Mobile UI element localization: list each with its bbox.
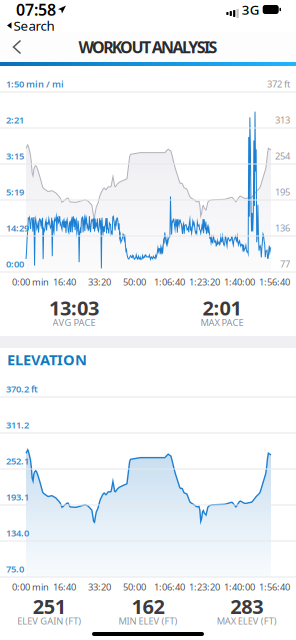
staticText: 14:29 bbox=[6, 222, 29, 234]
staticText: 50:00 bbox=[123, 581, 146, 593]
staticText: 0:00 min bbox=[12, 276, 49, 288]
staticText: 16:40 bbox=[53, 581, 76, 593]
staticText: 33:20 bbox=[88, 276, 111, 288]
staticText: 0:00 bbox=[6, 258, 24, 270]
staticText: 195 bbox=[275, 186, 290, 198]
staticText: 75.0 bbox=[6, 563, 24, 575]
staticText: 2:01 bbox=[202, 294, 241, 321]
staticText: 1:50 min / mi bbox=[6, 78, 64, 90]
staticText: 162 bbox=[131, 593, 164, 620]
staticText: 50:00 bbox=[123, 276, 146, 288]
staticText: 136 bbox=[275, 222, 290, 234]
staticText: 1:56:40 bbox=[259, 276, 290, 288]
staticText: ELEV GAIN (FT) bbox=[17, 615, 81, 627]
staticText: MAX PACE bbox=[200, 316, 243, 328]
staticText: 1:40:00 bbox=[224, 581, 255, 593]
staticText: 311.2 bbox=[6, 419, 29, 431]
staticText: 313 bbox=[275, 114, 290, 126]
staticText: 1:23:20 bbox=[189, 276, 220, 288]
staticText: 252.1 bbox=[6, 455, 29, 467]
staticText: 1:06:40 bbox=[154, 276, 185, 288]
staticText: AVG PACE bbox=[52, 316, 95, 328]
staticText: 3G bbox=[242, 1, 260, 18]
staticText: 33:20 bbox=[88, 581, 111, 593]
staticText: 16:40 bbox=[53, 276, 76, 288]
staticText: 1:56:40 bbox=[259, 581, 290, 593]
staticText: 1:23:20 bbox=[189, 581, 220, 593]
staticText: 134.0 bbox=[6, 527, 29, 539]
staticText: 193.1 bbox=[6, 491, 29, 503]
staticText: 254 bbox=[275, 150, 290, 162]
staticText: MIN ELEV (FT) bbox=[118, 615, 177, 627]
staticText: 283 bbox=[230, 593, 263, 620]
staticText: 5:19 bbox=[6, 186, 24, 198]
button[interactable]: ELEVATION bbox=[7, 350, 87, 369]
staticText: MAX ELEV (FT) bbox=[217, 615, 277, 627]
staticText: 2:21 bbox=[6, 114, 24, 126]
staticText: 0:00 min bbox=[12, 581, 49, 593]
staticText: ELEVATION bbox=[7, 350, 87, 369]
staticText: Search bbox=[13, 17, 54, 34]
staticText: 3:15 bbox=[6, 150, 24, 162]
staticText: 370.2 ft bbox=[6, 383, 38, 395]
staticText: 1:06:40 bbox=[154, 581, 185, 593]
staticText: 07:58 bbox=[16, 0, 56, 20]
staticText: 13:03 bbox=[49, 294, 99, 321]
staticText: 1:40:00 bbox=[224, 276, 255, 288]
staticText: 372 ft bbox=[267, 78, 290, 90]
staticText: 251 bbox=[33, 593, 66, 620]
button[interactable]: Back bbox=[0, 32, 34, 62]
staticText: WORKOUT ANALYSIS bbox=[78, 36, 217, 58]
staticText: 77 bbox=[280, 258, 290, 270]
